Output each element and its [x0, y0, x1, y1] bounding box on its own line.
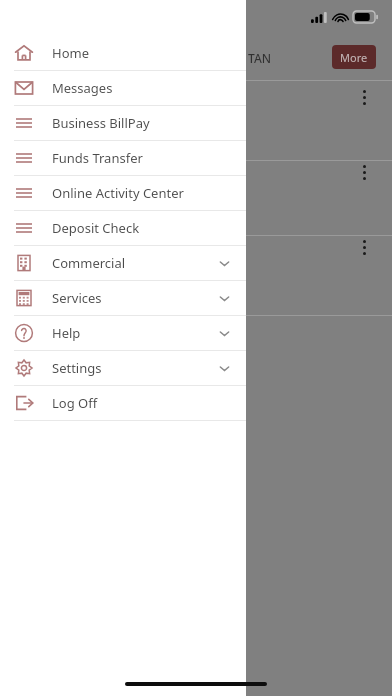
- staticText: TAN: [248, 50, 272, 66]
- button[interactable]: More options: [354, 240, 374, 262]
- button[interactable]: Commercial: [0, 246, 246, 280]
- button[interactable]: Home: [0, 36, 246, 70]
- staticText: Deposit Check: [52, 219, 140, 237]
- button[interactable]: More options: [354, 90, 374, 112]
- staticText: Home: [52, 44, 89, 62]
- staticText: More: [340, 50, 368, 65]
- staticText: Commercial: [52, 254, 126, 272]
- button[interactable]: More options: [354, 165, 374, 187]
- staticText: Help: [52, 324, 81, 342]
- button[interactable]: Business BillPay: [0, 106, 246, 140]
- button[interactable]: Funds Transfer: [0, 141, 246, 175]
- button[interactable]: Help: [0, 316, 246, 350]
- button[interactable]: Online Activity Center: [0, 176, 246, 210]
- staticText: Services: [52, 289, 102, 307]
- staticText: Log Off: [52, 394, 98, 412]
- staticText: Business BillPay: [52, 114, 150, 132]
- button[interactable]: Deposit Check: [0, 211, 246, 245]
- staticText: Online Activity Center: [52, 184, 184, 202]
- button[interactable]: Settings: [0, 351, 246, 385]
- button[interactable]: More: [332, 45, 376, 69]
- button[interactable]: Services: [0, 281, 246, 315]
- button[interactable]: Log Off: [0, 386, 246, 420]
- staticText: Messages: [52, 79, 113, 97]
- staticText: Funds Transfer: [52, 149, 143, 167]
- button[interactable]: Messages: [0, 71, 246, 105]
- staticText: Settings: [52, 359, 102, 377]
